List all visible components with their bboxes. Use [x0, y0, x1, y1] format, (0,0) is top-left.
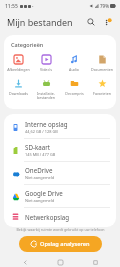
staticText: Favorieten: [93, 91, 111, 96]
button[interactable]: Audio: [60, 53, 88, 73]
button[interactable]: Zoeken: [84, 15, 98, 29]
staticText: Afbeeldingen: [7, 67, 30, 72]
button[interactable]: Home: [50, 258, 70, 267]
staticText: 11:55: [5, 3, 18, 10]
button[interactable]: Interne opslag: [4, 116, 116, 138]
staticText: Installatie- bestanden: [37, 91, 55, 101]
staticText: •: [32, 4, 34, 9]
button[interactable]: Recente apps: [85, 258, 105, 267]
button[interactable]: Documenten: [88, 53, 116, 73]
staticText: Niet aangemeld: [25, 198, 55, 203]
staticText: Categorieën: [11, 41, 44, 48]
staticText: Bekijk waarbij ruimte wordt gebruikt op …: [16, 227, 105, 232]
button[interactable]: Downloads: [4, 77, 32, 97]
button[interactable]: Decompris: [60, 77, 88, 97]
staticText: OneDrive: [25, 166, 53, 174]
staticText: 44,62 GB / 128 GB: [25, 129, 58, 134]
staticText: Documenten: [91, 67, 113, 72]
staticText: Downloads: [9, 91, 28, 96]
staticText: Opslag analyseren: [40, 240, 90, 248]
button[interactable]: Terug: [15, 258, 35, 267]
staticText: Netwerkopslag: [25, 213, 70, 221]
button[interactable]: Video's: [32, 53, 60, 73]
button[interactable]: SD-kaart: [4, 139, 116, 161]
button[interactable]: Netwerkopslag: [4, 208, 116, 225]
staticText: SD-kaart: [25, 143, 50, 151]
button[interactable]: Meer opties: [100, 15, 114, 29]
button[interactable]: Opslag analyseren: [19, 236, 102, 252]
staticText: Interne opslag: [25, 120, 68, 128]
button[interactable]: OneDrive: [4, 162, 116, 184]
button[interactable]: Google Drive: [4, 185, 116, 207]
staticText: 145 MB / 477 GB: [25, 152, 56, 157]
button[interactable]: Afbeeldingen: [4, 53, 32, 73]
staticText: Google Drive: [25, 189, 63, 197]
staticText: Audio: [69, 67, 79, 72]
button[interactable]: Favorieten: [88, 77, 116, 97]
staticText: Niet aangemeld: [25, 175, 55, 180]
staticText: 79%: [100, 3, 109, 9]
staticText: Decompris: [65, 91, 84, 96]
button[interactable]: Installatie- bestanden: [32, 77, 60, 102]
staticText: Video's: [40, 67, 52, 72]
staticText: Mijn bestanden: [7, 16, 73, 28]
